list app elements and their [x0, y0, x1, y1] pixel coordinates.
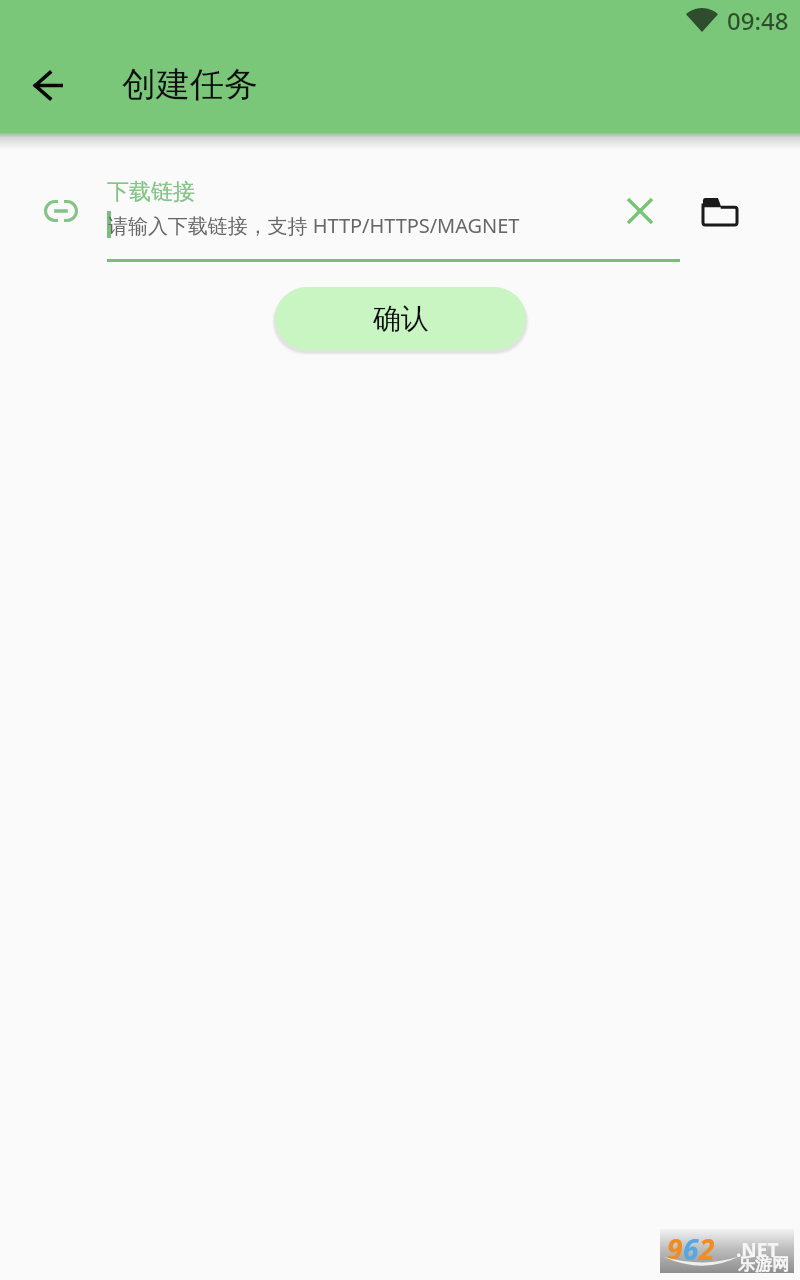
- staticText: 09:48: [727, 4, 789, 37]
- staticText: 2: [699, 1230, 715, 1268]
- button[interactable]: 下载链接: [107, 172, 680, 262]
- staticText: .NET: [736, 1237, 779, 1263]
- staticText: 下载链接: [107, 178, 195, 206]
- button[interactable]: Back: [16, 53, 80, 117]
- staticText: 9: [667, 1230, 683, 1268]
- staticText: 乐游网: [738, 1254, 789, 1275]
- button[interactable]: 确认: [275, 287, 526, 350]
- button[interactable]: Choose folder: [692, 183, 748, 239]
- staticText: 确认: [373, 301, 429, 336]
- staticText: 创建任务: [122, 63, 258, 106]
- button[interactable]: Clear: [612, 183, 668, 239]
- staticText: 请输入下载链接，支持 HTTP/HTTPS/MAGNET: [108, 212, 520, 239]
- staticText: 6: [683, 1230, 699, 1268]
